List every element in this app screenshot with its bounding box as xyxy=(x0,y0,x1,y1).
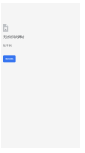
staticText: 找不到 xyxy=(3,44,12,47)
staticText: 重新加载 xyxy=(5,57,13,60)
button[interactable]: 重新加载 xyxy=(3,55,16,62)
staticText: 无法访问此网站 xyxy=(3,35,24,39)
